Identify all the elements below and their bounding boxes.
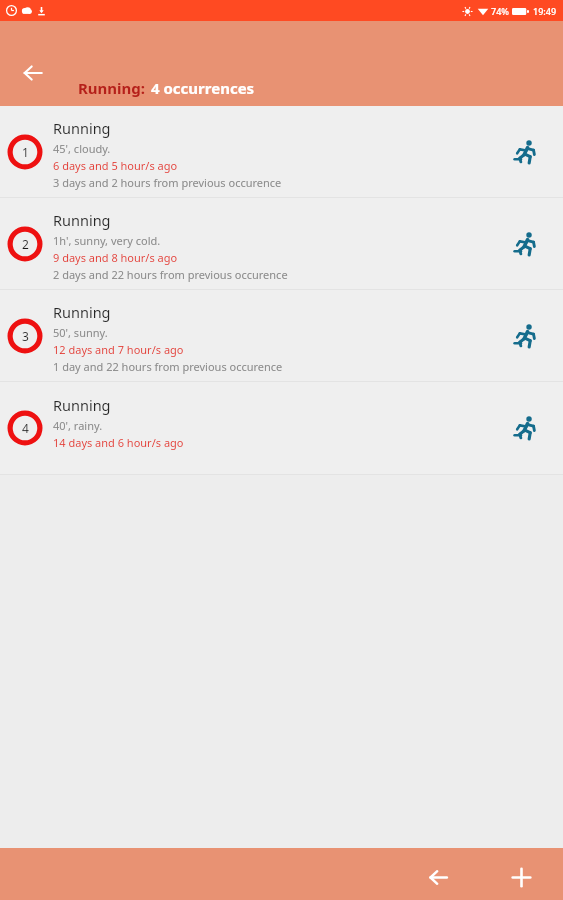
staticText: 1 day and 22 hours from previous occuren…: [53, 359, 283, 374]
button[interactable]: Running activity: [508, 411, 542, 445]
staticText: 2 days and 22 hours from previous occure…: [53, 267, 288, 282]
button[interactable]: Back: [416, 855, 460, 899]
button[interactable]: 3: [0, 290, 563, 381]
staticText: Running: [53, 210, 111, 230]
button[interactable]: 1: [0, 106, 563, 197]
staticText: 6 days and 5 hour/s ago: [53, 158, 178, 173]
staticText: 2: [22, 236, 29, 252]
staticText: 1h', sunny, very cold.: [53, 233, 161, 248]
staticText: 3: [22, 328, 29, 344]
button[interactable]: Running activity: [508, 227, 542, 261]
staticText: Running: [53, 118, 111, 138]
staticText: 45', cloudy.: [53, 141, 111, 156]
button[interactable]: Running activity: [508, 319, 542, 353]
staticText: 1: [22, 144, 29, 160]
button[interactable]: 2: [0, 198, 563, 289]
button[interactable]: Add: [499, 855, 543, 899]
staticText: 4: [22, 420, 29, 436]
staticText: 3 days and 2 hours from previous occuren…: [53, 175, 282, 190]
staticText: 74%: [491, 5, 509, 17]
staticText: 40', rainy.: [53, 418, 103, 433]
staticText: 9 days and 8 hour/s ago: [53, 250, 178, 265]
staticText: 4 occurrences: [151, 78, 255, 98]
staticText: Running:: [78, 78, 146, 98]
button[interactable]: 4: [0, 382, 563, 474]
staticText: 19:49: [533, 5, 557, 17]
button[interactable]: Back: [14, 54, 52, 92]
staticText: 14 days and 6 hour/s ago: [53, 435, 184, 450]
staticText: 50', sunny.: [53, 325, 108, 340]
staticText: 12 days and 7 hour/s ago: [53, 342, 184, 357]
staticText: Running: [53, 302, 111, 322]
staticText: Running: [53, 395, 111, 415]
button[interactable]: Running activity: [508, 135, 542, 169]
